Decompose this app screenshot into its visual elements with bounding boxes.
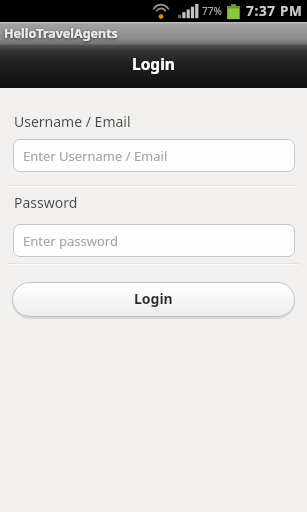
staticText: Password <box>14 193 78 212</box>
staticText: HelloTravelAgents <box>4 25 118 42</box>
staticText: 7:37 PM <box>246 2 303 20</box>
staticText: Login <box>134 289 173 308</box>
button[interactable]: Enter password <box>13 224 295 257</box>
staticText: Enter Username / Email <box>23 147 168 165</box>
staticText: Login <box>132 53 175 74</box>
staticText: Username / Email <box>14 112 131 131</box>
button[interactable]: Login <box>12 282 295 317</box>
button[interactable]: Enter Username / Email <box>13 139 295 172</box>
staticText: 77% <box>202 4 222 18</box>
staticText: Enter password <box>23 232 118 250</box>
